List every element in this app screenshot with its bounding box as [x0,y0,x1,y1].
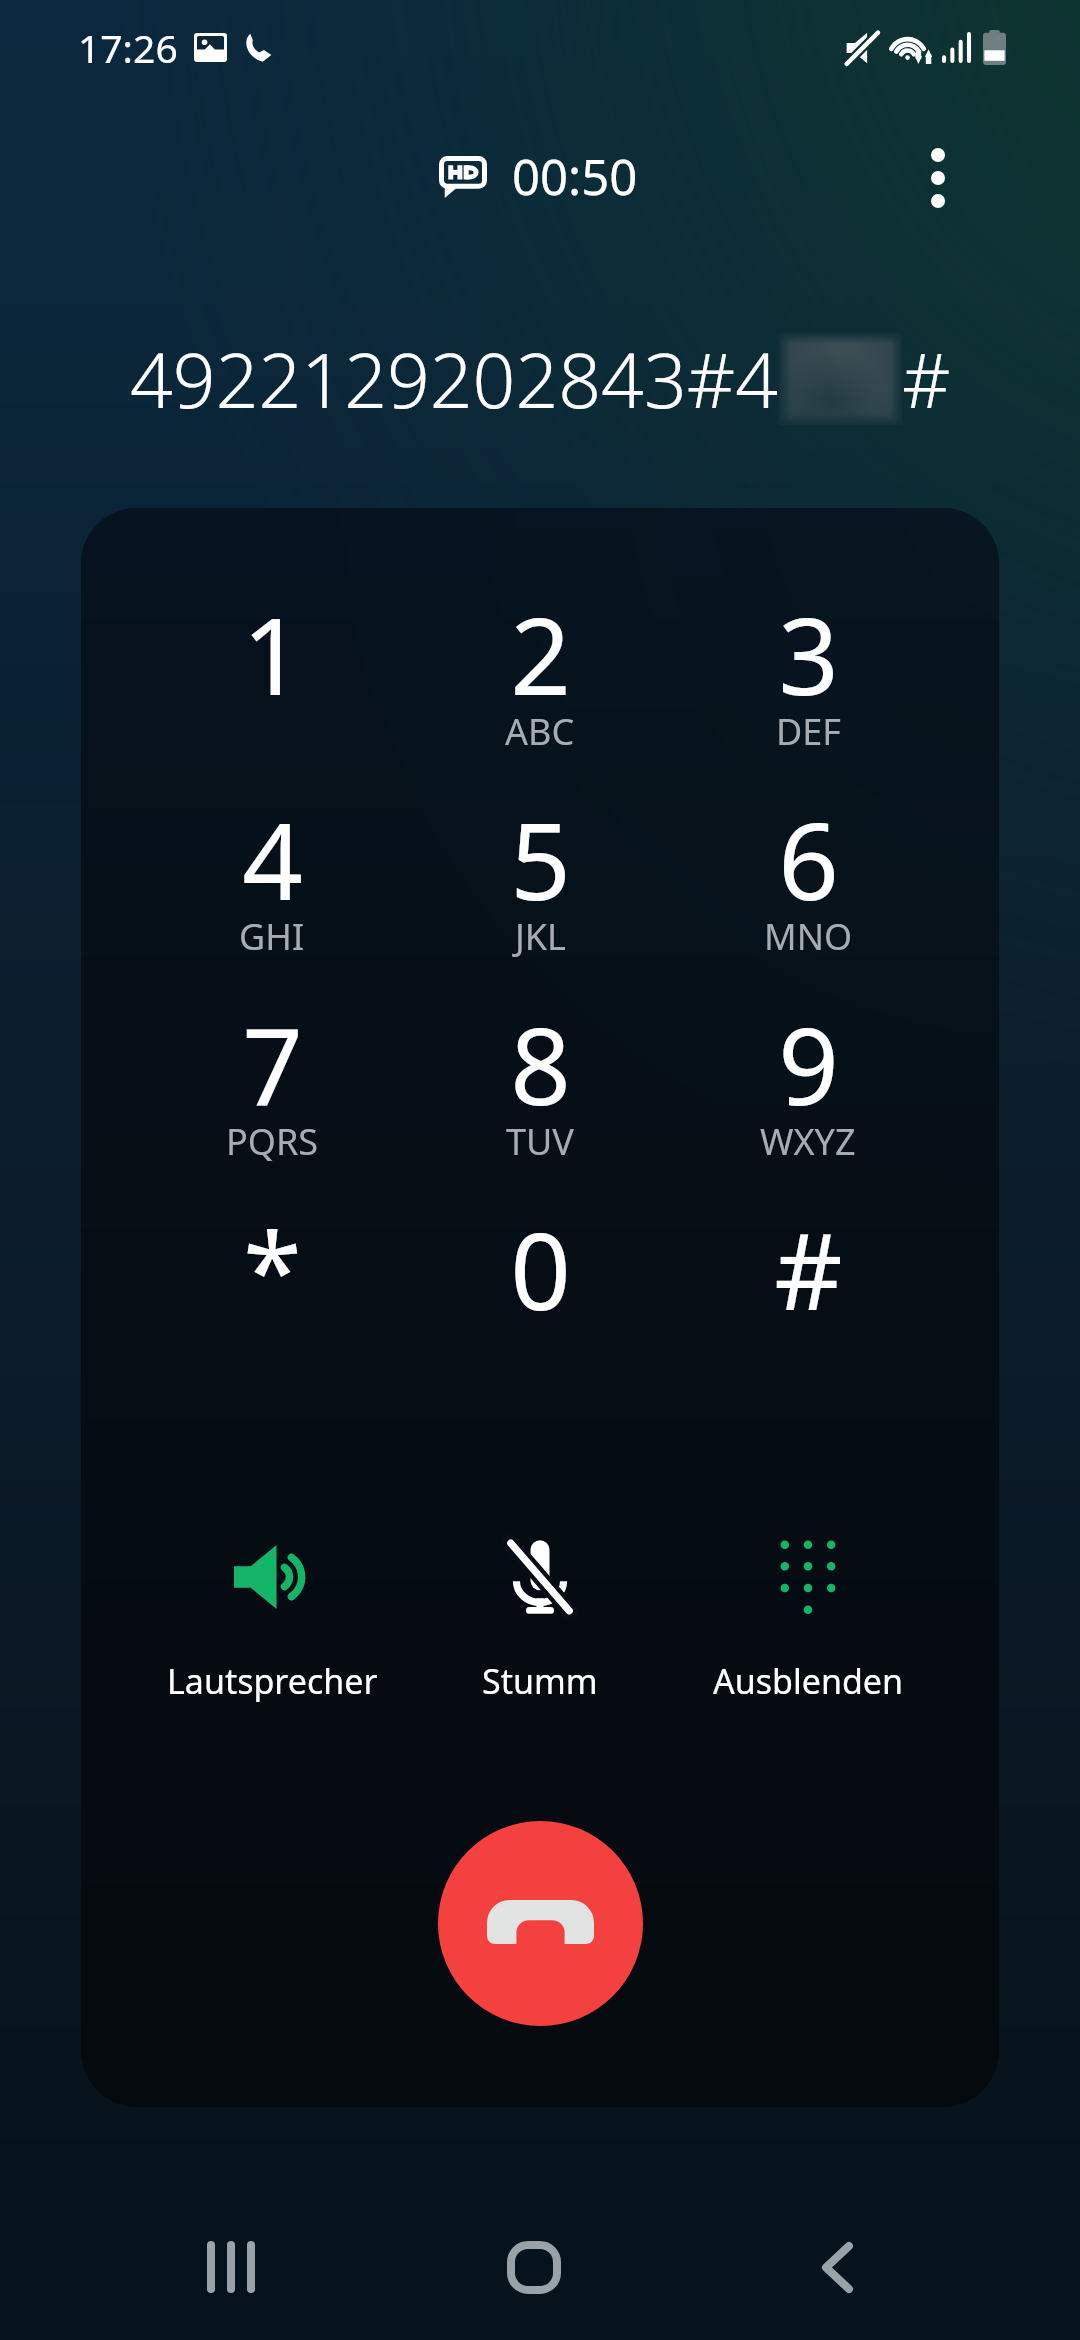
staticText: 7 [242,992,303,1136]
staticText: Stumm [482,1658,598,1704]
staticText: Ausblenden [713,1658,903,1704]
staticText: Lautsprecher [167,1658,378,1704]
staticText: 0 [510,1197,571,1341]
staticText: WXYZ [760,1117,856,1166]
staticText: 2 [510,582,571,726]
button[interactable]: 1 [138,568,406,773]
staticText: # [902,328,951,430]
button[interactable]: # [674,1183,942,1388]
staticText: TUV [506,1117,574,1166]
staticText: 9 [778,992,839,1136]
button[interactable]: * [138,1183,406,1388]
staticText: GHI [239,912,305,961]
button[interactable]: End call [438,1821,643,2026]
button[interactable]: Ausblenden [674,1539,942,1704]
button[interactable]: Home [458,2212,610,2322]
staticText: 17:26 [78,21,178,74]
button[interactable]: Back [761,2212,913,2322]
button[interactable]: 0 [406,1183,674,1388]
staticText: 6 [778,787,839,931]
staticText: 1 [242,582,303,726]
staticText: 4922129202843#4 [130,328,779,430]
button[interactable]: 7 [138,978,406,1183]
staticText: 5 [510,787,571,931]
staticText: # [774,1197,843,1341]
staticText: JKL [515,912,566,961]
button[interactable]: 8 [406,978,674,1183]
staticText: 00:50 [512,143,638,210]
button[interactable]: More options [878,118,998,238]
button[interactable]: 9 [674,978,942,1183]
button[interactable]: Recents [155,2212,307,2322]
staticText: 3 [778,582,839,726]
staticText: MNO [764,912,853,961]
staticText: ABC [505,707,575,756]
button[interactable]: 4 [138,773,406,978]
staticText: PQRS [226,1117,319,1166]
button[interactable]: 5 [406,773,674,978]
staticText: 8 [510,992,571,1136]
button[interactable]: 3 [674,568,942,773]
staticText: 4 [242,787,303,931]
button[interactable]: 6 [674,773,942,978]
button[interactable]: Lautsprecher [138,1539,406,1704]
staticText: * [243,1197,302,1341]
button[interactable]: 2 [406,568,674,773]
button[interactable]: Stumm [406,1539,674,1704]
staticText: DEF [776,707,841,756]
